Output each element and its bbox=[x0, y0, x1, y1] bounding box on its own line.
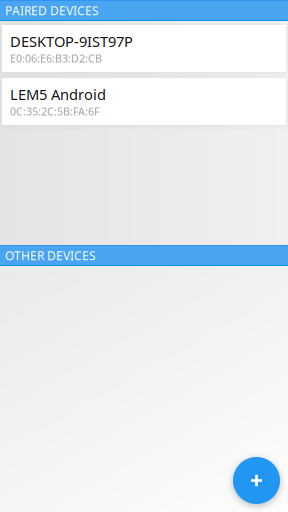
staticText: DESKTOP-9IST97P bbox=[10, 32, 133, 51]
button[interactable]: LEM5 Android bbox=[2, 78, 286, 125]
staticText: E0:06:E6:B3:D2:CB bbox=[10, 51, 102, 65]
button[interactable]: DESKTOP-9IST97P bbox=[2, 25, 286, 72]
staticText: LEM5 Android bbox=[10, 85, 106, 104]
staticText: PAIRED DEVICES bbox=[5, 2, 99, 18]
staticText: OTHER DEVICES bbox=[5, 247, 96, 263]
staticText: 0C:35:2C:5B:FA:6F bbox=[10, 104, 100, 118]
button[interactable]: Add device bbox=[233, 457, 280, 504]
